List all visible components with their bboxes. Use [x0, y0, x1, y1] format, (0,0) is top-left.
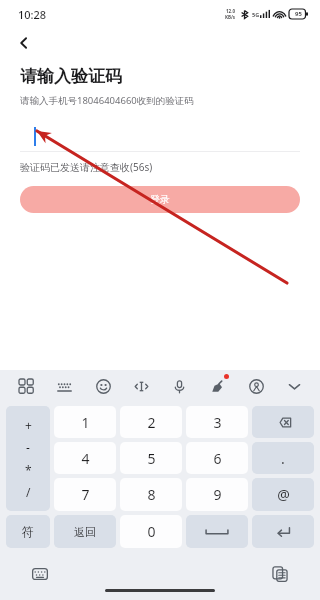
staticText: *	[25, 462, 32, 478]
button[interactable]: Keyboard	[52, 374, 76, 398]
staticText: @	[277, 485, 290, 504]
button[interactable]: Emoji	[91, 374, 115, 398]
button[interactable]: 返回	[54, 515, 116, 548]
button[interactable]: 9	[186, 478, 248, 511]
staticText: 请输入验证码	[20, 66, 122, 87]
button[interactable]	[252, 406, 314, 438]
staticText: 请输入手机号18046404660收到的验证码	[20, 94, 194, 107]
button[interactable]: Clipboard	[268, 562, 292, 586]
button[interactable]: 4	[54, 442, 116, 474]
staticText: 3	[213, 413, 222, 432]
staticText: 4	[81, 449, 90, 468]
button[interactable]: +	[6, 406, 50, 511]
button[interactable]: @	[252, 478, 314, 511]
staticText: 符	[22, 524, 34, 539]
staticText: 5	[147, 449, 156, 468]
staticText: 7	[81, 485, 90, 504]
staticText: 12.0	[226, 8, 235, 14]
button[interactable]: 0	[120, 515, 182, 548]
staticText: 登录	[150, 193, 170, 206]
button[interactable]: 2	[120, 406, 182, 438]
button[interactable]: 7	[54, 478, 116, 511]
staticText: 0	[147, 522, 156, 541]
button[interactable]: Voice input	[167, 374, 191, 398]
button[interactable]: 8	[120, 478, 182, 511]
button[interactable]: Back	[10, 29, 38, 57]
button[interactable]: .	[252, 442, 314, 474]
button[interactable]: 符	[6, 515, 50, 548]
button[interactable]: 登录	[20, 186, 300, 213]
staticText: 2	[147, 413, 156, 432]
button[interactable]: Hide keyboard	[282, 374, 306, 398]
staticText: 9	[213, 485, 222, 504]
button[interactable]: 6	[186, 442, 248, 474]
staticText: +	[25, 417, 32, 433]
button[interactable]: 1	[54, 406, 116, 438]
button[interactable]: Switch keyboard	[28, 562, 52, 586]
button[interactable]: Cursor	[129, 374, 153, 398]
staticText: /	[26, 484, 31, 500]
button[interactable]	[252, 515, 314, 548]
staticText: 8	[147, 485, 156, 504]
button[interactable]: 5	[120, 442, 182, 474]
staticText: 5G	[252, 11, 260, 18]
button[interactable]	[186, 515, 248, 548]
staticText: 6	[213, 449, 222, 468]
button[interactable]: Account	[244, 374, 268, 398]
button[interactable]: 3	[186, 406, 248, 438]
staticText: 10:28	[18, 7, 47, 22]
staticText: 验证码已发送请注意查收(56s)	[20, 160, 153, 174]
staticText: 返回	[74, 525, 96, 539]
staticText: -	[26, 439, 30, 455]
staticText: 95	[295, 10, 302, 18]
staticText: .	[281, 449, 285, 468]
staticText: 1	[81, 413, 90, 432]
staticText: KB/s	[225, 14, 236, 20]
button[interactable]: Apps	[14, 374, 38, 398]
button[interactable]: Sticker	[205, 374, 229, 398]
